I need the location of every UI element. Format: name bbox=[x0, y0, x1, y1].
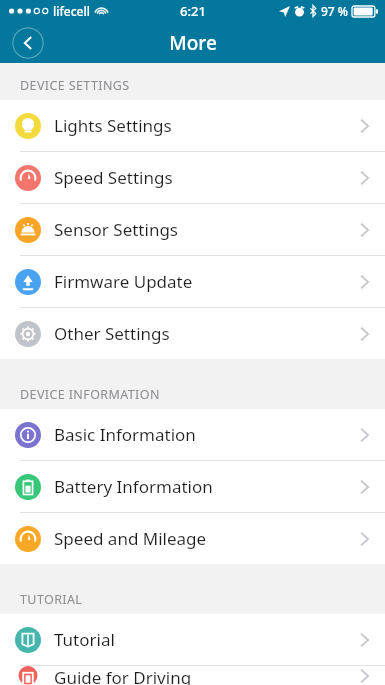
staticText: Speed Settings bbox=[54, 166, 360, 189]
button[interactable]: Lights Settings bbox=[0, 100, 385, 152]
button[interactable]: Guide for Driving bbox=[0, 666, 385, 685]
button[interactable]: Firmware Update bbox=[0, 256, 385, 308]
staticText: 97 % bbox=[321, 3, 349, 19]
staticText: Speed and Mileage bbox=[54, 527, 360, 550]
staticText: Tutorial bbox=[54, 628, 360, 651]
staticText: Battery Information bbox=[54, 475, 360, 498]
button[interactable]: Back bbox=[12, 27, 44, 59]
staticText: Guide for Driving bbox=[54, 666, 360, 685]
button[interactable]: Battery Information bbox=[0, 461, 385, 513]
staticText: Firmware Update bbox=[54, 270, 360, 293]
button[interactable]: Tutorial bbox=[0, 614, 385, 666]
button[interactable]: Speed and Mileage bbox=[0, 513, 385, 564]
button[interactable]: Basic Information bbox=[0, 409, 385, 461]
staticText: More bbox=[169, 30, 217, 56]
staticText: DEVICE SETTINGS bbox=[20, 77, 130, 94]
staticText: Basic Information bbox=[54, 423, 360, 446]
staticText: lifecell bbox=[53, 3, 90, 19]
button[interactable]: Sensor Settings bbox=[0, 204, 385, 256]
staticText: TUTORIAL bbox=[20, 591, 83, 608]
staticText: DEVICE INFORMATION bbox=[20, 386, 160, 403]
staticText: Other Settings bbox=[54, 322, 360, 345]
button[interactable]: Other Settings bbox=[0, 308, 385, 359]
staticText: 6:21 bbox=[180, 2, 206, 20]
staticText: Sensor Settings bbox=[54, 218, 360, 241]
staticText: Lights Settings bbox=[54, 114, 360, 137]
button[interactable]: Speed Settings bbox=[0, 152, 385, 204]
